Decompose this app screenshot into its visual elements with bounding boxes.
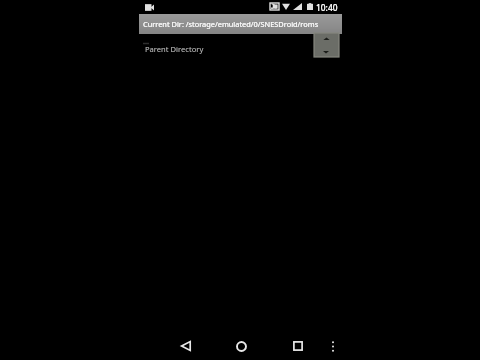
button[interactable]: Current Dir: /storage/emulated/0/SNESDro… <box>139 14 342 34</box>
button[interactable]: More options <box>323 336 343 356</box>
button[interactable]: Home <box>228 333 254 359</box>
staticText: Parent Directory <box>145 44 204 54</box>
button[interactable]: Parent Directory <box>139 33 342 57</box>
staticText: Current Dir: /storage/emulated/0/SNESDro… <box>143 19 319 29</box>
button[interactable]: Back <box>173 333 199 359</box>
button[interactable]: Fast scroll <box>314 33 339 57</box>
button[interactable]: Recent apps <box>285 333 311 359</box>
staticText: 10:40 <box>316 2 338 13</box>
